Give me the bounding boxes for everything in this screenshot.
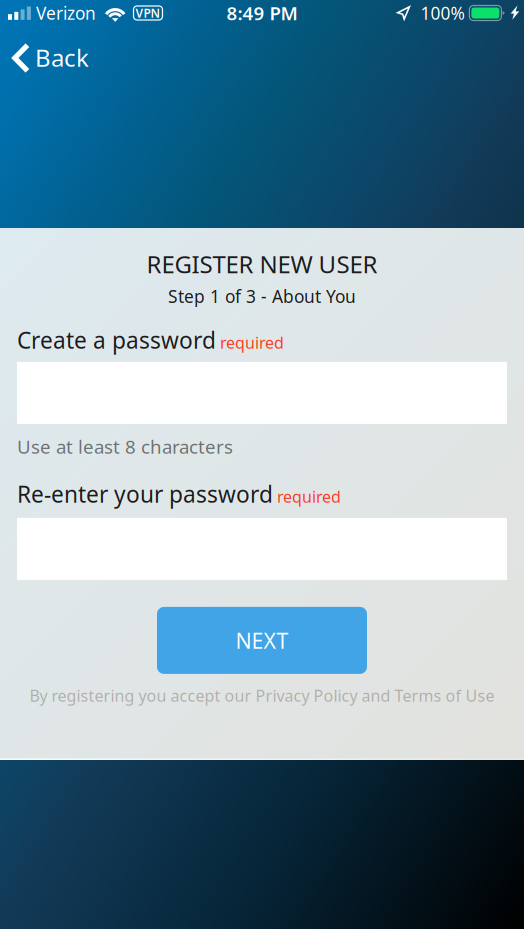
staticText: 8:49 PM [226,1,297,25]
button[interactable]: Back [0,35,103,81]
staticText: Re-enter your password [17,479,273,509]
staticText: NEXT [235,626,288,654]
staticText: Step 1 of 3 - About You [168,285,356,308]
staticText: Verizon [36,1,96,24]
staticText: REGISTER NEW USER [146,248,377,280]
staticText: Create a password [17,325,216,355]
staticText: Back [35,42,89,73]
staticText: required [220,332,284,353]
staticText: Use at least 8 characters [17,434,233,459]
staticText: required [277,486,341,507]
staticText: By registering you accept our Privacy Po… [29,685,494,706]
staticText: 100% [420,1,464,24]
button[interactable]: NEXT [157,607,367,674]
staticText: VPN [135,5,160,21]
